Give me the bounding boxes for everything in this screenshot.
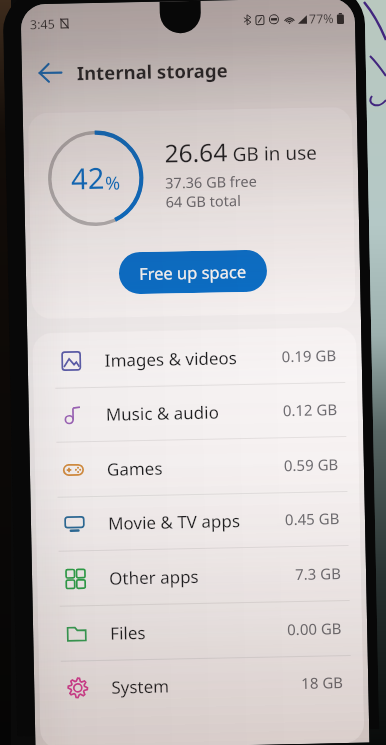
staticText: 7.3 GB (295, 563, 341, 584)
staticText: % (105, 170, 120, 196)
staticText: 18 GB (301, 672, 343, 693)
button[interactable]: Games (34, 437, 359, 497)
staticText: GB in use (232, 139, 318, 167)
staticText: 0.45 GB (285, 508, 340, 529)
staticText: Music & audio (106, 400, 220, 426)
button[interactable]: Files (38, 601, 363, 661)
button[interactable]: System (39, 655, 364, 715)
button[interactable]: Movie & TV apps (35, 491, 360, 551)
button[interactable]: Music & audio (33, 382, 358, 442)
staticText: 37.36 GB free (165, 171, 257, 192)
staticText: Images & videos (104, 346, 238, 372)
button[interactable]: Images & videos (32, 328, 357, 388)
staticText: Internal storage (77, 57, 228, 85)
staticText: 42 (71, 158, 105, 197)
staticText: 0.00 GB (287, 618, 342, 639)
button[interactable]: Free up space (119, 249, 267, 294)
staticText: 0.19 GB (281, 345, 337, 366)
staticText: Movie & TV apps (108, 509, 240, 535)
staticText: Games (107, 457, 163, 481)
staticText: System (111, 674, 169, 699)
staticText: Free up space (139, 260, 247, 284)
staticText: 0.12 GB (283, 399, 338, 420)
staticText: 3:45 (30, 16, 55, 33)
button[interactable]: Back (30, 52, 70, 93)
staticText: Other apps (109, 565, 199, 590)
staticText: 64 GB total (165, 190, 242, 211)
staticText: 77% (309, 10, 334, 28)
button[interactable]: Other apps (37, 546, 362, 606)
staticText: Files (110, 621, 146, 645)
staticText: 0.59 GB (284, 454, 339, 475)
staticText: 26.64 (164, 135, 228, 170)
